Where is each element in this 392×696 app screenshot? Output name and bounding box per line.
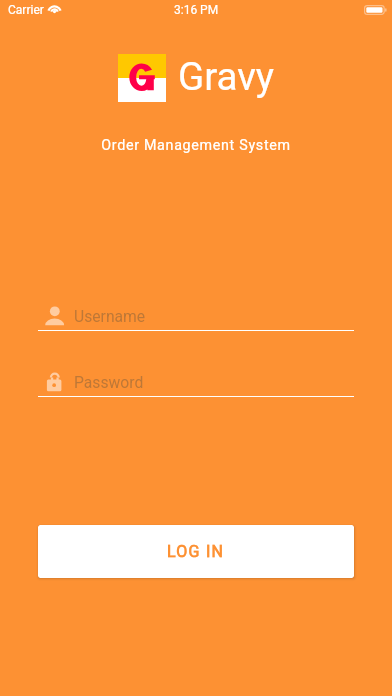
staticText: Username [74, 307, 146, 325]
other: Battery full [364, 5, 387, 15]
button[interactable]: Password [0, 368, 392, 400]
staticText: 3:16 PM [174, 3, 219, 17]
staticText: Password [74, 373, 144, 391]
button[interactable]: Username [0, 302, 392, 334]
button[interactable]: LOG IN [38, 525, 354, 578]
staticText: Gravy [178, 54, 275, 99]
staticText: Carrier [8, 3, 44, 17]
staticText: LOG IN [167, 542, 225, 561]
other: Wi-Fi signal [48, 3, 61, 13]
staticText: Order Management System [0, 137, 392, 154]
